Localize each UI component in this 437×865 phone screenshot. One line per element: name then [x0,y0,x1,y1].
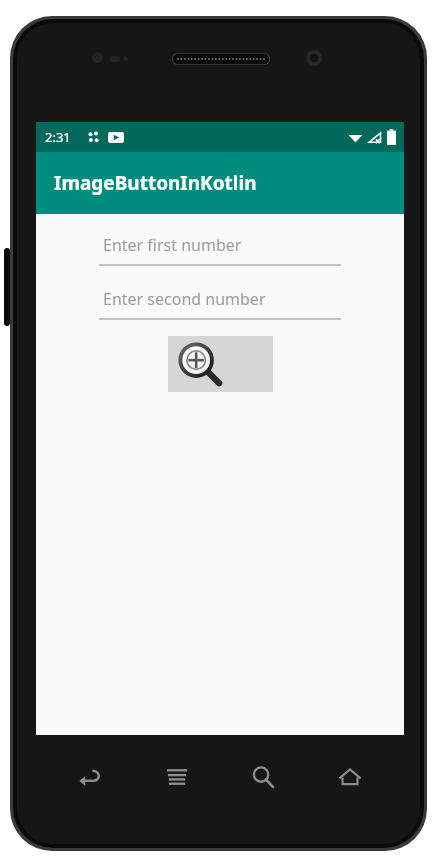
button[interactable]: Menu [145,757,209,797]
button[interactable]: Enter second number [99,284,341,320]
staticText: Enter second number [103,288,266,310]
staticText: ImageButtonInKotlin [54,170,257,196]
button[interactable]: Home [318,757,382,797]
button[interactable]: Zoom in [168,336,273,392]
button[interactable]: Enter first number [99,230,341,266]
button[interactable]: Search [231,757,295,797]
staticText: 2:31 [45,128,71,146]
staticText: Enter first number [103,234,242,256]
button[interactable]: Back [58,757,122,797]
